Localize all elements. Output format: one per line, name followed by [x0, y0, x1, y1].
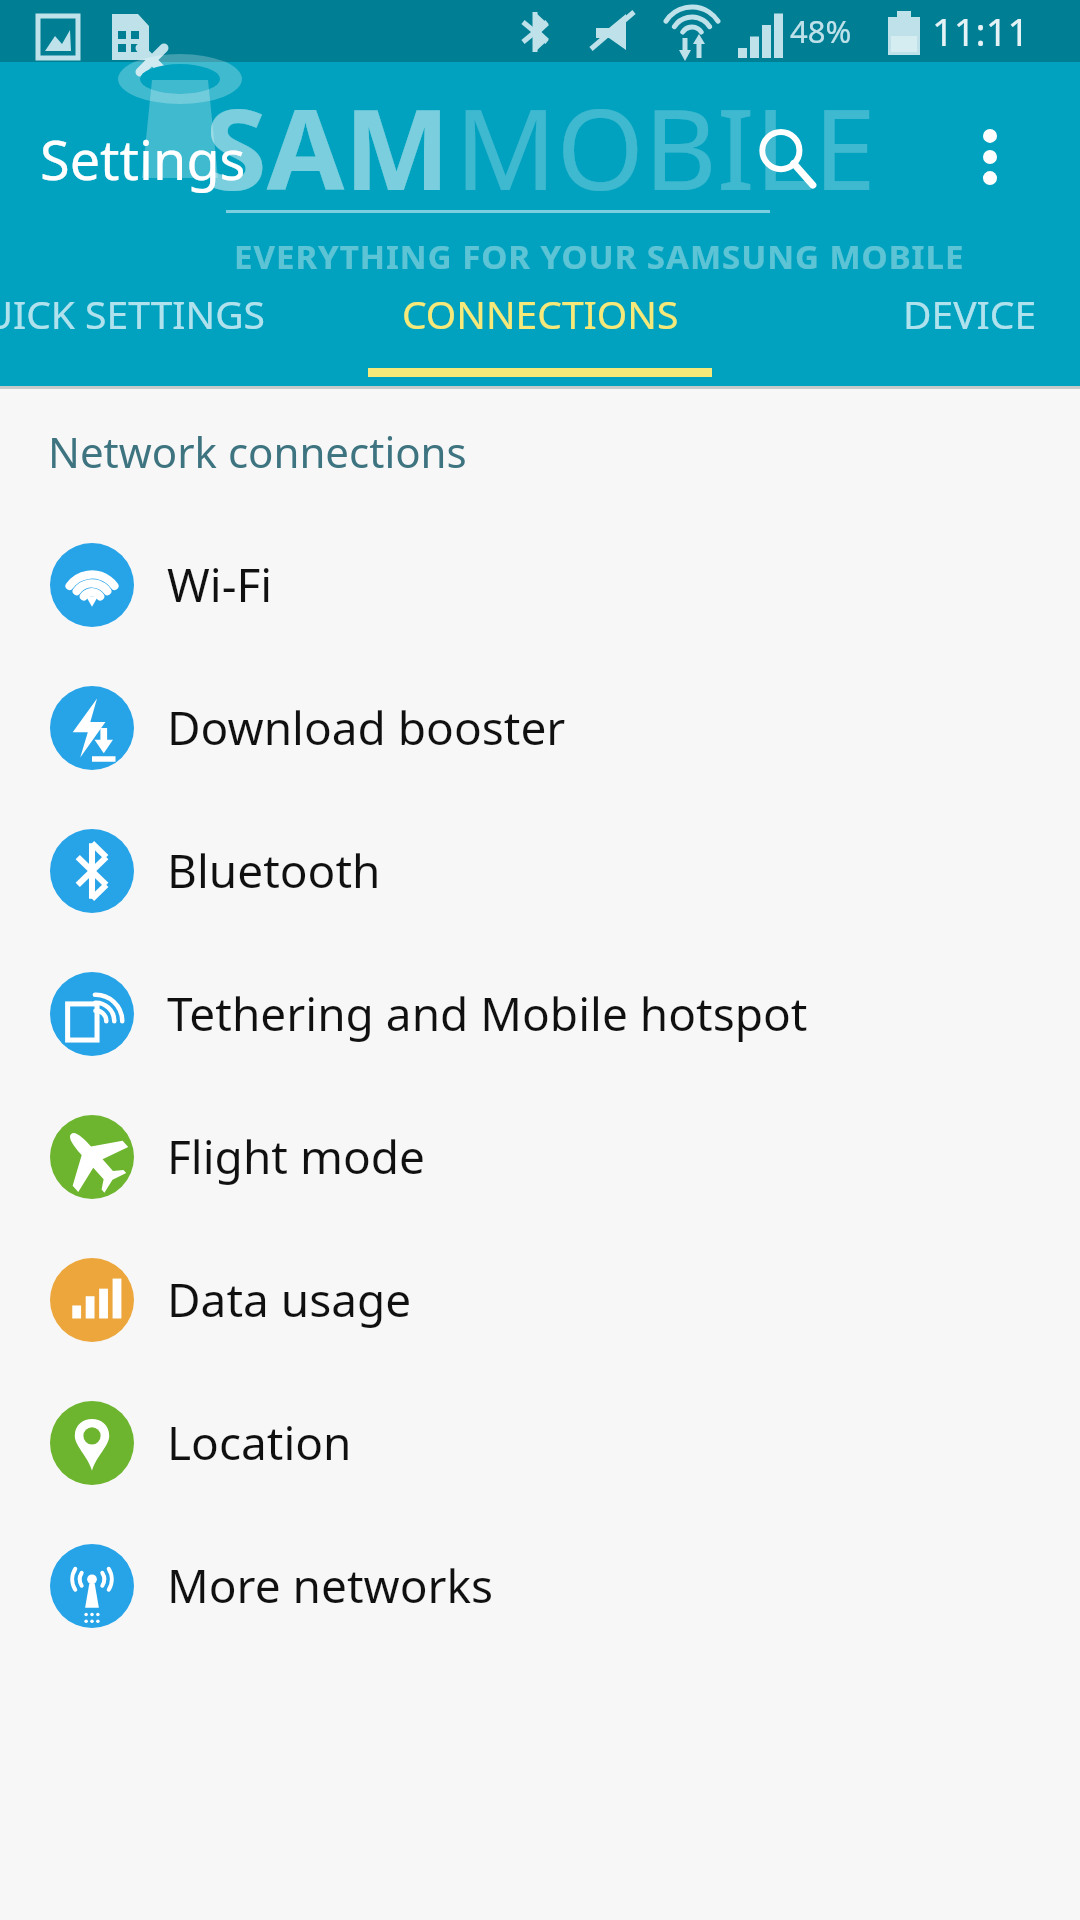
staticText: Wi-Fi	[167, 553, 273, 616]
button[interactable]: More networks	[0, 1514, 1080, 1657]
button[interactable]: Search	[736, 107, 836, 207]
staticText: Download booster	[167, 696, 566, 759]
staticText: Location	[167, 1411, 352, 1474]
staticText: QUICK SETTINGS	[0, 287, 266, 340]
staticText: Network connections	[48, 423, 467, 480]
staticText: 11:11	[932, 5, 1030, 57]
button[interactable]: Location	[0, 1371, 1080, 1514]
button[interactable]: Wi-Fi	[0, 513, 1080, 656]
staticText: DEVICE	[903, 287, 1037, 340]
staticText: 48%	[790, 10, 852, 52]
staticText: Bluetooth	[167, 839, 381, 902]
button[interactable]: Download booster	[0, 656, 1080, 799]
staticText: Settings	[40, 122, 246, 196]
button[interactable]: CONNECTIONS	[368, 270, 712, 356]
staticText: Data usage	[167, 1268, 412, 1331]
staticText: SAM	[205, 70, 450, 223]
staticText: Tethering and Mobile hotspot	[167, 982, 808, 1045]
button[interactable]: DEVICE	[798, 270, 1080, 356]
button[interactable]: Data usage	[0, 1228, 1080, 1371]
button[interactable]: Flight mode	[0, 1085, 1080, 1228]
staticText: CONNECTIONS	[402, 287, 679, 340]
button[interactable]: Tethering and Mobile hotspot	[0, 942, 1080, 1085]
button[interactable]: Bluetooth	[0, 799, 1080, 942]
staticText: Flight mode	[167, 1125, 425, 1188]
button[interactable]: More options	[940, 107, 1040, 207]
button[interactable]: QUICK SETTINGS	[0, 270, 282, 356]
staticText: EVERYTHING FOR YOUR SAMSUNG MOBILE	[234, 234, 965, 279]
staticText: More networks	[167, 1554, 494, 1617]
staticText: MOBILE	[455, 70, 876, 223]
